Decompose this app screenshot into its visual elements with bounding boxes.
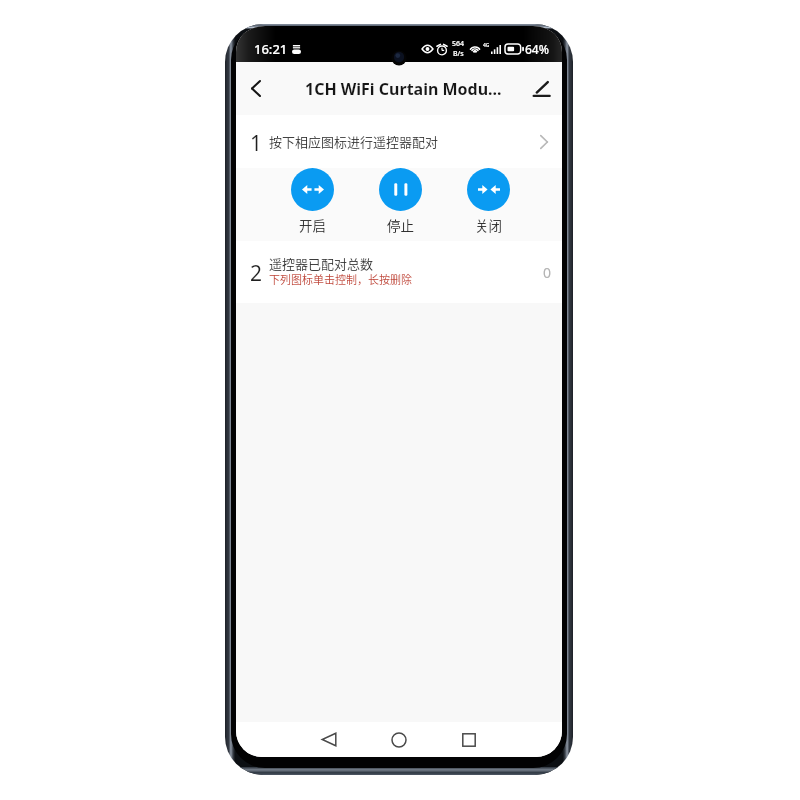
staticText: 1	[250, 129, 263, 158]
button[interactable]: Recents	[434, 722, 504, 757]
button[interactable]: Edit	[524, 62, 558, 115]
staticText: 0	[543, 263, 552, 282]
button[interactable]: 2	[236, 241, 562, 303]
staticText: B/s	[453, 49, 464, 59]
button[interactable]: 停止	[356, 168, 444, 235]
staticText: 564	[452, 39, 465, 49]
staticText: 下列图标单击控制，长按删除	[269, 271, 412, 287]
button[interactable]: 1	[236, 115, 562, 168]
button[interactable]: 开启	[268, 168, 356, 235]
staticText: 停止	[387, 215, 414, 235]
staticText: 遥控器已配对总数	[269, 254, 374, 273]
staticText: 2	[250, 259, 263, 288]
staticText: 开启	[299, 215, 326, 235]
staticText: 4G	[483, 42, 490, 49]
button[interactable]: Back	[294, 722, 364, 757]
staticText: 16:21	[254, 40, 288, 58]
button[interactable]: Home	[364, 722, 434, 757]
button[interactable]: 关闭	[444, 168, 532, 235]
staticText: 关闭	[475, 215, 502, 235]
staticText: 按下相应图标进行遥控器配对	[269, 132, 439, 151]
button[interactable]: Back	[238, 62, 274, 115]
staticText: 64%	[525, 41, 549, 57]
staticText: 1CH WiFi Curtain Modu...	[305, 78, 502, 100]
